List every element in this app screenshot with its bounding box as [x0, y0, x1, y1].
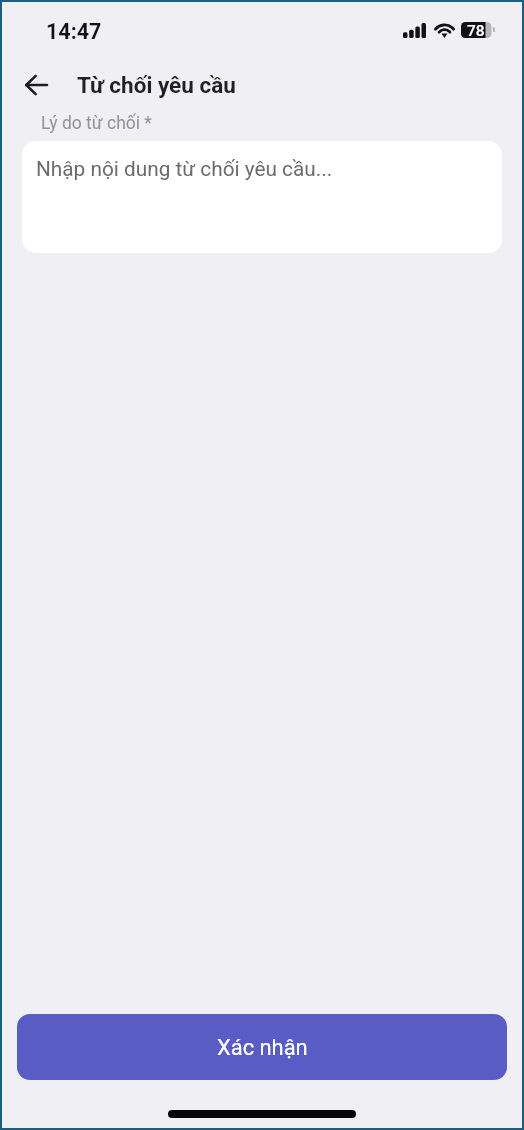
staticText: 78 [467, 22, 485, 38]
staticText: 14:47 [46, 19, 102, 44]
button[interactable]: Nhập nội dung từ chối yêu cầu... [22, 141, 502, 253]
staticText: Lý do từ chối * [41, 113, 152, 134]
staticText: Từ chối yêu cầu [77, 72, 236, 98]
staticText: Nhập nội dung từ chối yêu cầu... [36, 157, 333, 181]
button[interactable]: Back [12, 61, 60, 109]
staticText: Xác nhận [217, 1035, 308, 1061]
button[interactable]: Xác nhận [17, 1014, 507, 1080]
